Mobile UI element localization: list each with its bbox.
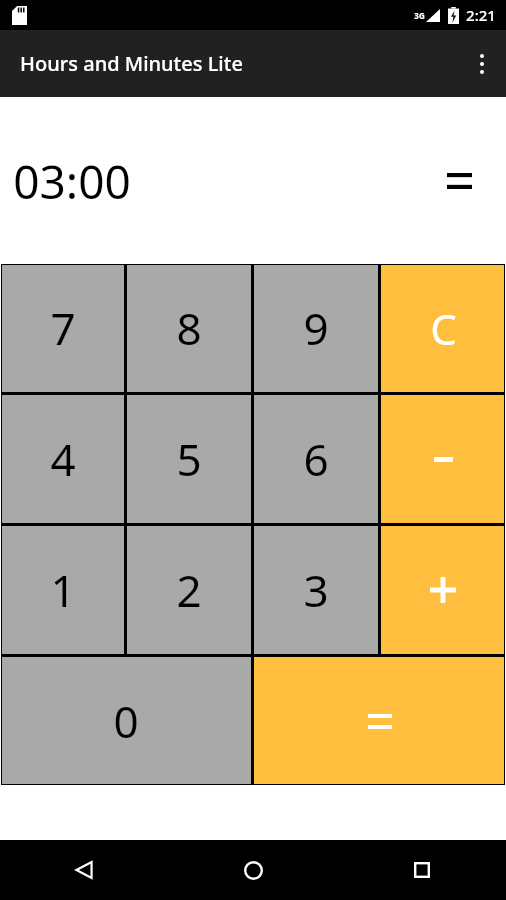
button[interactable]: 9 bbox=[254, 264, 378, 392]
staticText: 3G bbox=[414, 10, 425, 21]
staticText: 03:00 bbox=[13, 150, 131, 213]
button[interactable]: Equals bbox=[438, 160, 480, 202]
staticText: 8 bbox=[176, 298, 202, 358]
button[interactable]: Back bbox=[60, 846, 108, 894]
button[interactable] bbox=[381, 395, 505, 523]
staticText: Hours and Minutes Lite bbox=[20, 50, 243, 77]
button[interactable]: Recent apps bbox=[398, 846, 446, 894]
button[interactable]: 6 bbox=[254, 395, 378, 523]
button[interactable]: 8 bbox=[127, 264, 251, 392]
staticText: C bbox=[430, 300, 457, 357]
staticText: 1 bbox=[50, 560, 76, 620]
button[interactable]: Home bbox=[229, 846, 277, 894]
button[interactable]: 0 bbox=[1, 657, 251, 785]
staticText: 6 bbox=[303, 429, 329, 489]
button[interactable]: 3 bbox=[254, 526, 378, 654]
button[interactable]: Equals bbox=[254, 657, 505, 785]
button[interactable]: 2 bbox=[127, 526, 251, 654]
staticText: 9 bbox=[303, 298, 329, 358]
button[interactable] bbox=[381, 526, 505, 654]
staticText: 0 bbox=[113, 691, 139, 751]
button[interactable]: 7 bbox=[1, 264, 124, 392]
staticText: 2:21 bbox=[466, 5, 496, 25]
staticText: 2 bbox=[176, 560, 202, 620]
staticText: 5 bbox=[176, 429, 202, 489]
staticText: 3 bbox=[303, 560, 329, 620]
staticText: 4 bbox=[50, 429, 76, 489]
button[interactable]: 5 bbox=[127, 395, 251, 523]
button[interactable]: 4 bbox=[1, 395, 124, 523]
button[interactable]: More options bbox=[458, 40, 506, 88]
button[interactable]: 1 bbox=[1, 526, 124, 654]
staticText: 7 bbox=[50, 298, 76, 358]
button[interactable]: C bbox=[381, 264, 505, 392]
